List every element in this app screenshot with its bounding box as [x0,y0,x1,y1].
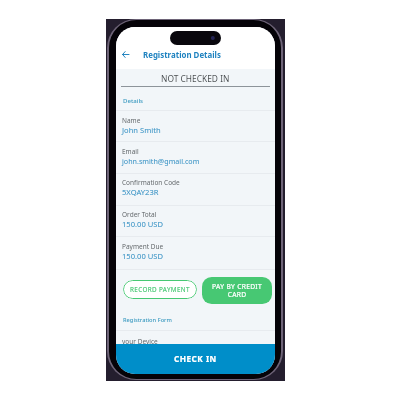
staticText: 5XQAY23R [122,187,159,197]
staticText: RECORD PAYMENT [130,285,190,294]
staticText: Order Total [122,210,157,219]
staticText: Registration Form [123,316,172,324]
staticText: Registration Details [143,50,221,61]
staticText: Email [122,147,139,156]
button[interactable]: Back [117,46,134,63]
button[interactable] [116,111,275,141]
staticText: NOT CHECKED IN [161,73,230,84]
staticText: Payment Due [122,242,164,251]
staticText: 150.00 USD [122,219,163,229]
button[interactable]: PAY BY CREDIT CARD [202,277,272,304]
staticText: PAY BY CREDIT CARD [209,282,265,299]
staticText: CHECK IN [174,353,217,364]
staticText: your Device [122,337,158,346]
button[interactable]: RECORD PAYMENT [123,280,197,299]
staticText: John Smith [122,125,161,135]
button[interactable] [116,173,275,204]
staticText: Details [123,96,144,104]
staticText: 150.00 USD [122,251,163,261]
staticText: john.smith@gmail.com [122,156,200,166]
button[interactable] [116,87,275,110]
button[interactable] [116,142,275,173]
button[interactable] [116,312,275,330]
button[interactable] [116,205,275,236]
button[interactable]: CHECK IN [116,344,275,374]
staticText: Name [122,116,141,125]
staticText: Confirmation Code [122,178,180,187]
button[interactable] [116,237,275,268]
